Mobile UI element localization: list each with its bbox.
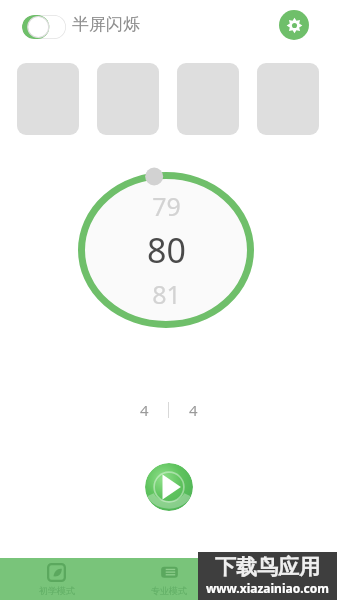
button[interactable]: Settings — [279, 10, 309, 40]
button[interactable]: 初学模式 — [0, 558, 113, 600]
staticText: 80 — [147, 227, 186, 273]
button[interactable] — [22, 15, 66, 39]
staticText: 十键模式 — [263, 585, 299, 596]
staticText: www.xiazainiao.com — [206, 580, 329, 596]
staticText: 4 — [189, 400, 198, 420]
button[interactable] — [97, 63, 159, 135]
staticText: 半屏闪烁 — [72, 14, 140, 35]
button[interactable] — [177, 63, 239, 135]
button[interactable]: 4 — [120, 400, 168, 420]
staticText: 81 — [152, 277, 181, 311]
button[interactable]: 十键模式 — [225, 558, 337, 600]
staticText: 79 — [152, 189, 181, 223]
button[interactable]: 专业模式 — [113, 558, 225, 600]
button[interactable] — [257, 63, 319, 135]
staticText: 下载鸟应用 — [215, 554, 320, 580]
staticText: 专业模式 — [151, 585, 187, 596]
button[interactable] — [17, 63, 79, 135]
button[interactable]: Play — [145, 463, 193, 511]
staticText: 初学模式 — [39, 585, 75, 596]
button[interactable]: 4 — [169, 400, 217, 420]
staticText: 4 — [140, 400, 149, 420]
